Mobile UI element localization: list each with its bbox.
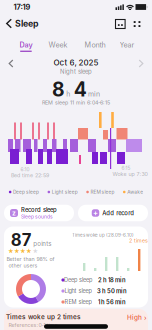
staticText: 4 [74, 78, 87, 101]
staticText: z [12, 209, 16, 217]
staticText: Light sleep [52, 189, 78, 195]
staticText: Awake [127, 189, 143, 195]
staticText: min [88, 90, 100, 98]
staticText: ★ [32, 248, 38, 254]
staticText: 1 h 56 min [98, 299, 126, 305]
staticText: 2 times [129, 237, 148, 243]
button[interactable]: Next day [136, 57, 146, 70]
staticText: Month [84, 41, 105, 49]
staticText: 6:15 [121, 165, 130, 171]
button[interactable]: Times woke up 2 times [4, 309, 148, 330]
button[interactable]: Week [46, 39, 69, 51]
staticText: REM sleep 11 min 6:04-6:15 [42, 99, 110, 105]
staticText: Week [48, 41, 67, 49]
staticText: 8 [52, 78, 65, 101]
staticText: ★★★★ [8, 248, 32, 254]
staticText: other users [8, 262, 37, 268]
staticText: Sleep [15, 18, 39, 28]
staticText: + [93, 209, 98, 217]
button[interactable]: Day [17, 39, 34, 51]
button[interactable]: z [4, 205, 74, 221]
staticText: Better than 98% of [6, 256, 54, 262]
button[interactable]: Previous day [6, 57, 16, 70]
staticText: 2 h 18 min [98, 277, 126, 283]
staticText: Night sleep [60, 68, 92, 75]
button[interactable]: + [78, 205, 148, 221]
staticText: Year [119, 41, 134, 49]
staticText: Sleep sounds [21, 214, 53, 219]
button[interactable]: Calendar [114, 18, 126, 30]
staticText: Bed time 22:59 [11, 172, 49, 178]
staticText: 87 [11, 230, 32, 250]
staticText: Light sleep [64, 288, 91, 294]
staticText: Times woke up 2 times [6, 313, 81, 321]
button[interactable]: Year [117, 39, 136, 51]
button[interactable]: More [131, 18, 143, 30]
staticText: Deep sleep [13, 189, 39, 195]
staticText: Deep sleep [64, 277, 92, 283]
staticText: Add record [102, 210, 134, 216]
staticText: REM sleep [90, 189, 114, 195]
staticText: 6:10 [20, 167, 29, 172]
staticText: REM sleep [64, 299, 91, 305]
staticText: Oct 6, 2025 [53, 58, 98, 67]
staticText: 17:19 [13, 3, 30, 11]
staticText: h [66, 90, 70, 98]
staticText: Woke up 7:30 [112, 171, 147, 177]
staticText: Times woke up (28.09-6.10) [72, 232, 134, 238]
button[interactable]: Back [4, 16, 14, 31]
staticText: 3 h 50 min [97, 288, 127, 294]
staticText: References: 0-1 time [8, 322, 57, 328]
staticText: Record sleep [21, 206, 57, 213]
staticText: Day [19, 41, 32, 49]
button[interactable]: Month [82, 39, 107, 51]
staticText: points [33, 240, 51, 247]
staticText: High › [127, 314, 147, 321]
